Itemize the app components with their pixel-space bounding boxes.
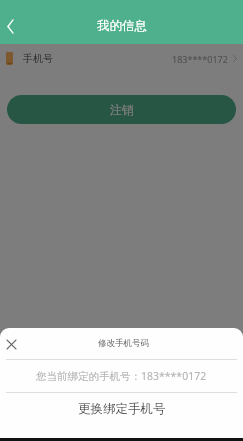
button[interactable]: Back bbox=[0, 13, 20, 39]
staticText: 手机号 bbox=[23, 52, 53, 65]
staticText: 您当前绑定的手机号：183****0172 bbox=[36, 369, 207, 383]
button[interactable]: Close bbox=[2, 335, 20, 353]
button[interactable]: 注销 bbox=[7, 95, 236, 124]
staticText: 更换绑定手机号 bbox=[78, 401, 166, 417]
staticText: 我的信息 bbox=[97, 18, 147, 34]
staticText: 修改手机号码 bbox=[98, 338, 149, 349]
staticText: 183****0172 bbox=[172, 53, 228, 65]
button[interactable]: 更换绑定手机号 bbox=[0, 393, 243, 424]
staticText: 注销 bbox=[110, 102, 134, 117]
button[interactable]: 手机号 bbox=[0, 44, 243, 73]
